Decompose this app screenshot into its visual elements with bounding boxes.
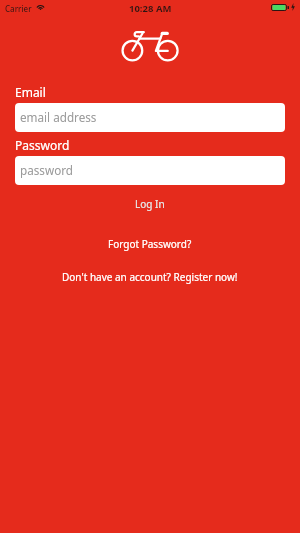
button[interactable]: email address: [15, 103, 285, 132]
button[interactable]: Forgot Password?: [0, 235, 300, 253]
staticText: Email: [15, 84, 46, 100]
button[interactable]: Log In: [0, 195, 300, 213]
other: Bike logo: [120, 28, 180, 64]
button[interactable]: Don't have an account? Register now!: [0, 268, 300, 286]
staticText: Carrier: [5, 3, 32, 14]
staticText: Don't have an account? Register now!: [62, 270, 238, 284]
staticText: password: [20, 162, 73, 178]
staticText: 10:28 AM: [129, 2, 172, 15]
staticText: Password: [15, 137, 70, 153]
staticText: Forgot Password?: [108, 237, 192, 251]
button[interactable]: password: [15, 156, 285, 185]
staticText: Log In: [135, 197, 165, 211]
staticText: email address: [20, 109, 97, 125]
